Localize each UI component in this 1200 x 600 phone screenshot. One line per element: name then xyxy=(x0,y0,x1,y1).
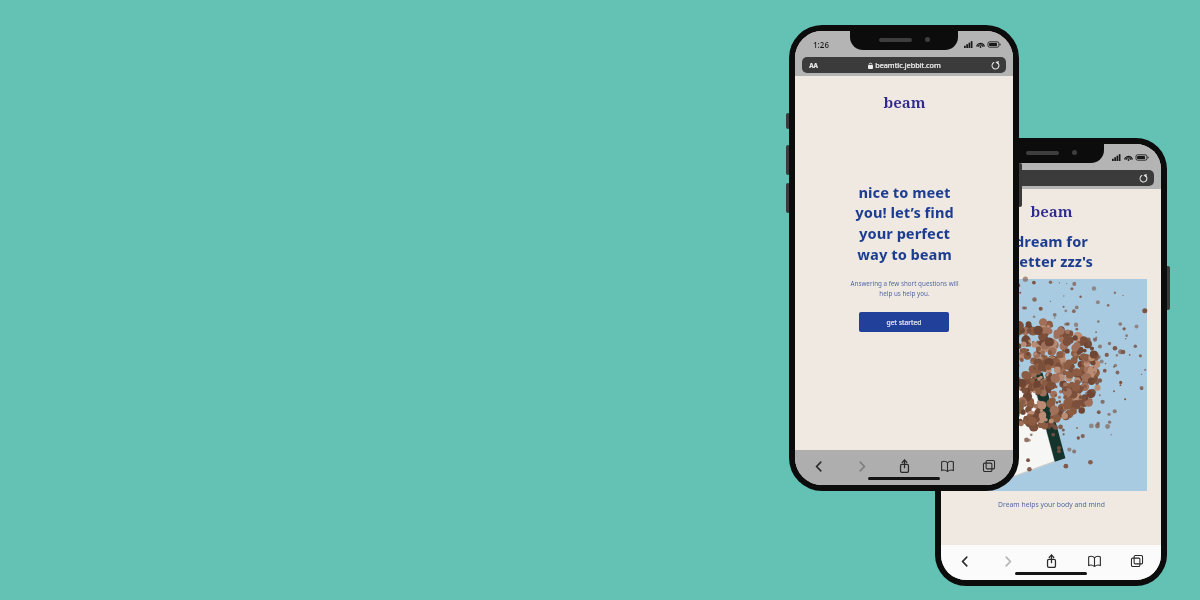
staticText: get started xyxy=(886,318,922,327)
button[interactable]: beamtlc.jebbit.com xyxy=(948,170,1154,186)
staticText: nice to meet you! let’s find your perfec… xyxy=(855,182,954,265)
staticText: dream for better zzz's xyxy=(1010,231,1093,271)
button[interactable]: AA xyxy=(802,57,1006,73)
button[interactable]: Share xyxy=(893,455,915,477)
staticText: Dream helps your body and mind xyxy=(998,500,1105,509)
staticText: beam xyxy=(1030,201,1073,221)
staticText: AA xyxy=(809,61,818,70)
button[interactable]: Bookmarks xyxy=(936,455,958,477)
button[interactable]: Forward xyxy=(851,455,873,477)
staticText: 1:26 xyxy=(813,39,829,50)
button[interactable]: Forward xyxy=(997,550,1019,572)
staticText: Answering a few short questions will hel… xyxy=(850,279,959,298)
button[interactable]: Back xyxy=(954,550,976,572)
button[interactable]: Bookmarks xyxy=(1083,550,1105,572)
button[interactable]: Back xyxy=(808,455,830,477)
button[interactable]: Share xyxy=(1040,550,1062,572)
staticText: beamtlc.jebbit.com xyxy=(875,60,941,70)
staticText: beamtlc.jebbit.com xyxy=(951,173,1017,183)
button[interactable]: get started xyxy=(859,312,949,332)
button[interactable]: Tabs xyxy=(1126,550,1148,572)
staticText: beam xyxy=(883,92,926,112)
button[interactable]: Tabs xyxy=(978,455,1000,477)
